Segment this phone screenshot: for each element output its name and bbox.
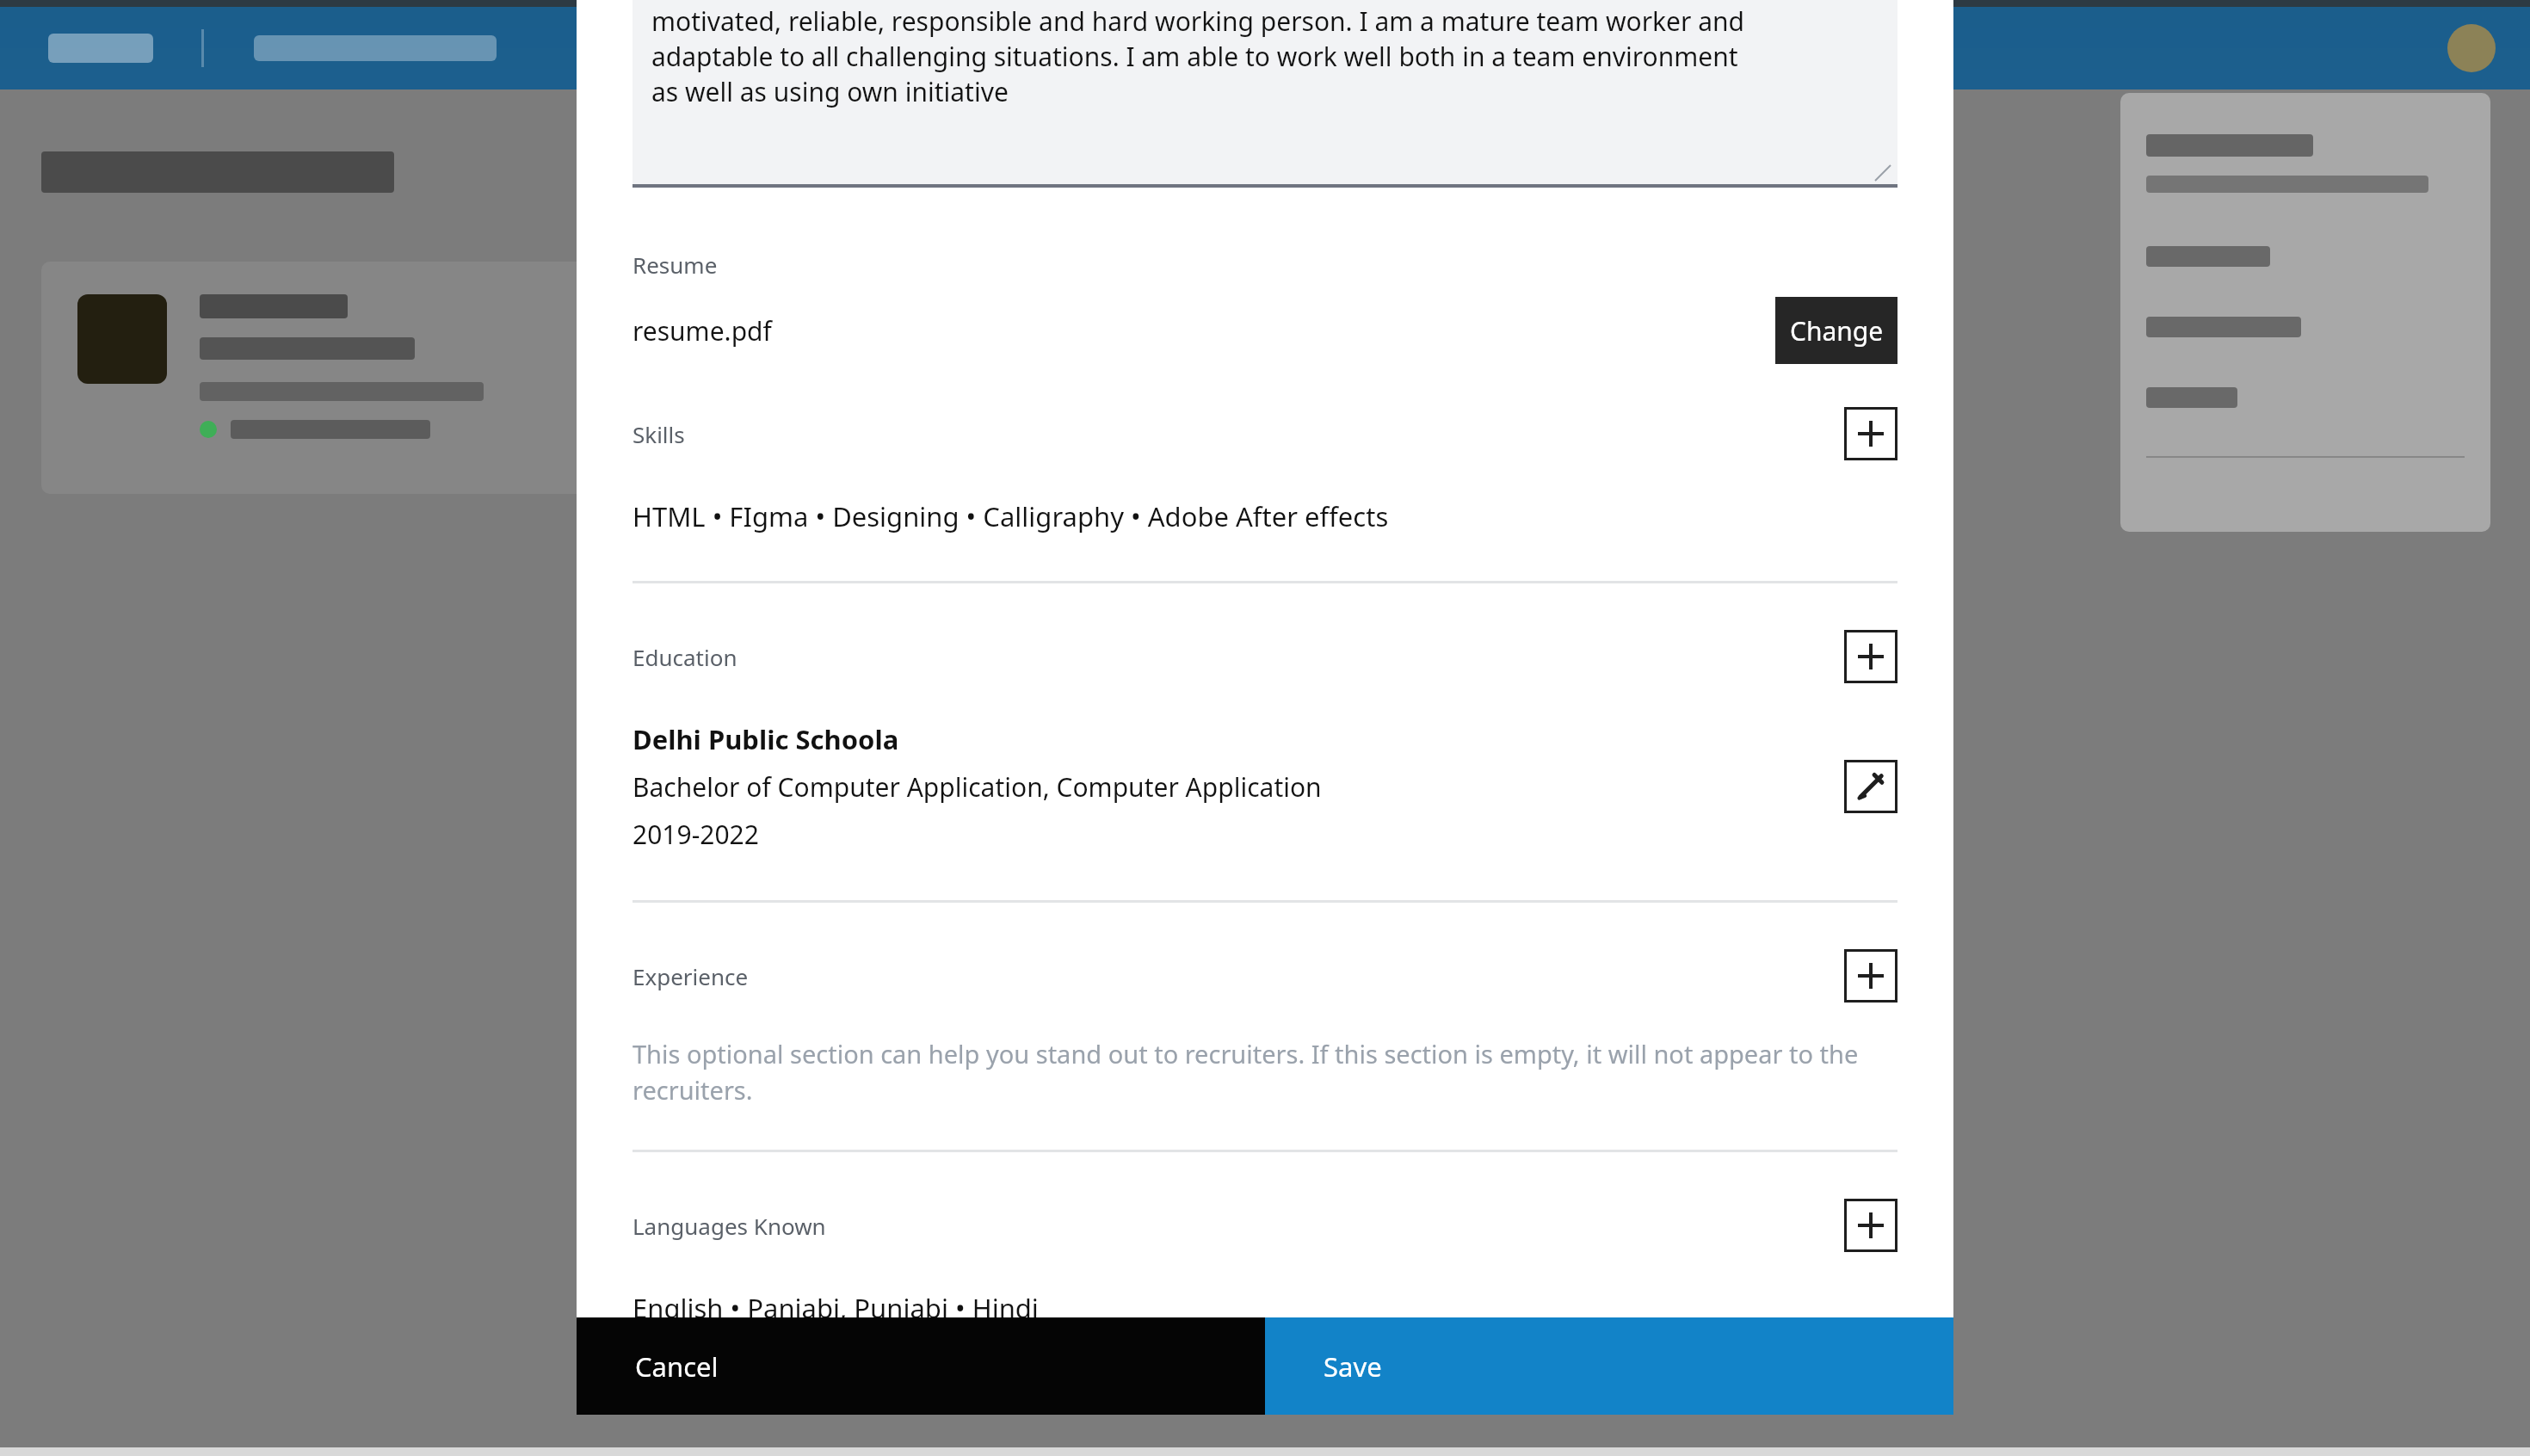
button[interactable]	[48, 34, 153, 63]
button[interactable]: Edit education	[1844, 760, 1897, 813]
staticText: English • Panjabi, Punjabi • Hindi	[632, 1290, 1039, 1317]
staticText: This optional section can help you stand…	[632, 1037, 1897, 1107]
button[interactable]: Add Skills	[1844, 407, 1897, 460]
staticText: Resume	[632, 250, 718, 280]
button[interactable]: Add Languages Known	[1844, 1199, 1897, 1252]
staticText: 2019-2022	[632, 817, 759, 852]
button[interactable]: Add Experience	[1844, 949, 1897, 1003]
staticText: Bachelor of Computer Application, Comput…	[632, 769, 1322, 805]
button[interactable]: Cancel	[577, 1317, 1265, 1415]
button[interactable]: Add Education	[1844, 630, 1897, 683]
staticText: Delhi Public Schoola	[632, 721, 899, 757]
button[interactable]	[41, 262, 1083, 494]
button[interactable]	[2146, 387, 2237, 408]
staticText: Languages Known	[632, 1211, 826, 1241]
button[interactable]	[2146, 317, 2301, 337]
staticText: resume.pdf	[632, 313, 772, 349]
button[interactable]	[2146, 246, 2270, 267]
button[interactable]: Account	[2447, 24, 2496, 72]
staticText: as well as using own initiative	[651, 74, 1009, 109]
staticText: Change	[1790, 313, 1884, 349]
staticText: Save	[1324, 1348, 1382, 1385]
staticText: Experience	[632, 961, 749, 991]
staticText: Skills	[632, 419, 685, 449]
staticText: Cancel	[635, 1348, 719, 1385]
button[interactable]: motivated, reliable, responsible and har…	[632, 0, 1897, 188]
staticText: adaptable to all challenging situations.…	[651, 39, 1738, 74]
staticText: Education	[632, 642, 737, 672]
button[interactable]: Change	[1775, 297, 1897, 364]
button[interactable]	[254, 35, 497, 61]
staticText: motivated, reliable, responsible and har…	[651, 3, 1744, 39]
button[interactable]: Save	[1265, 1317, 1953, 1415]
staticText: HTML • FIgma • Designing • Calligraphy •…	[632, 498, 1389, 534]
